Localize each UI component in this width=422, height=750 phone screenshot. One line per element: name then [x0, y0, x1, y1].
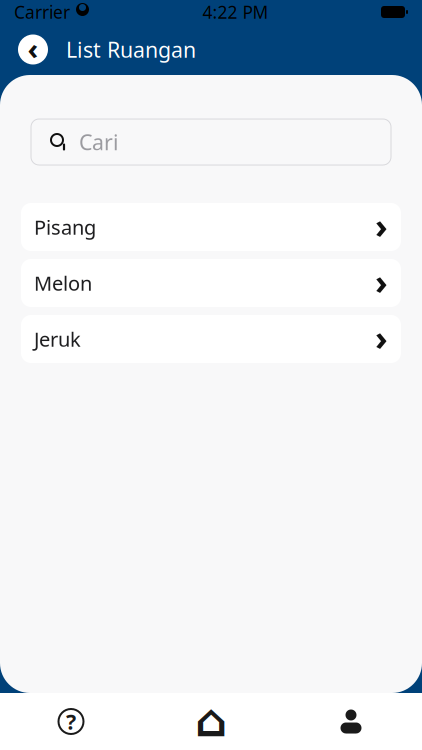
staticText: ›: [375, 314, 388, 360]
staticText: 4:22 PM: [202, 0, 268, 23]
staticText: ?: [66, 707, 76, 736]
staticText: ›: [375, 202, 388, 248]
staticText: Pisang: [34, 214, 96, 240]
staticText: Cari: [79, 128, 119, 156]
button[interactable]: Profile: [281, 693, 421, 750]
staticText: ›: [375, 258, 388, 304]
staticText: Jeruk: [34, 326, 81, 352]
button[interactable]: Home: [141, 693, 281, 750]
staticText: Melon: [34, 270, 92, 296]
button[interactable]: Jeruk: [21, 315, 401, 363]
button[interactable]: Back: [18, 34, 48, 64]
button[interactable]: Melon: [21, 259, 401, 307]
button[interactable]: Pisang: [21, 203, 401, 251]
staticText: Carrier: [14, 0, 70, 23]
staticText: ‹: [27, 28, 38, 67]
button[interactable]: Help: [1, 693, 141, 750]
staticText: List Ruangan: [66, 35, 196, 64]
staticText: ⌂: [195, 695, 227, 746]
